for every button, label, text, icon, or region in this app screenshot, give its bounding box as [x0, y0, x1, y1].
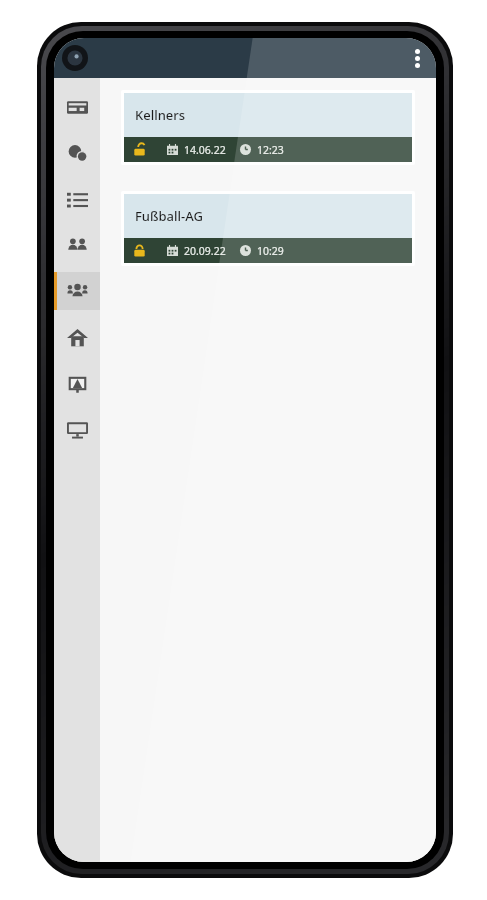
button[interactable]: Groups — [54, 272, 100, 310]
button[interactable]: Screen — [54, 410, 100, 448]
staticText: 10:29 — [257, 244, 284, 258]
button[interactable]: Kellners — [124, 93, 412, 162]
button[interactable]: Cards — [54, 88, 100, 126]
button[interactable]: Board — [54, 364, 100, 402]
button[interactable]: More options — [398, 39, 436, 77]
staticText: 14.06.22 — [184, 143, 226, 157]
button[interactable]: Home — [54, 318, 100, 356]
staticText: Fußball-AG — [135, 207, 203, 225]
button[interactable]: Contacts — [54, 226, 100, 264]
button[interactable]: Fußball-AG — [124, 194, 412, 263]
staticText: Kellners — [135, 106, 186, 124]
staticText: 12:23 — [257, 143, 284, 157]
staticText: 20.09.22 — [184, 244, 226, 258]
button[interactable]: Chat — [54, 134, 100, 172]
button[interactable]: List — [54, 180, 100, 218]
